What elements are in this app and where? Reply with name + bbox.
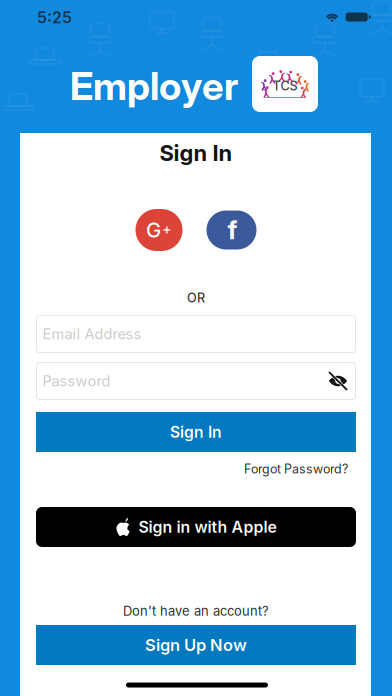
- staticText: Sign In: [159, 140, 232, 166]
- staticText: Don't have an account?: [123, 603, 269, 619]
- staticText: f: [227, 215, 237, 245]
- staticText: Sign Up Now: [145, 635, 247, 655]
- staticText: OR: [187, 290, 205, 306]
- staticText: G: [146, 218, 161, 242]
- staticText: TCS: [272, 78, 297, 94]
- button[interactable]: Sign in with Google: [135, 209, 182, 251]
- button[interactable]: Sign in with Facebook: [206, 210, 256, 249]
- staticText: +: [162, 220, 172, 238]
- staticText: Email Address: [42, 325, 141, 343]
- staticText: Forgot Password?: [244, 461, 348, 476]
- staticText: Employer: [70, 63, 238, 109]
- button[interactable]: Forgot Password?: [240, 457, 352, 480]
- staticText: Sign In: [170, 423, 222, 441]
- button[interactable]: Show password: [322, 366, 354, 396]
- staticText: Password: [42, 372, 110, 390]
- button[interactable]: Sign in with Apple: [36, 507, 356, 547]
- button[interactable]: Sign Up Now: [36, 625, 356, 665]
- staticText: 5:25: [37, 8, 72, 27]
- staticText: Sign in with Apple: [138, 517, 276, 537]
- button[interactable]: Sign In: [36, 412, 356, 452]
